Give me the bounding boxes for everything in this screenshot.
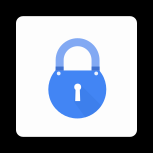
- button[interactable]: Lock: [16, 16, 137, 137]
